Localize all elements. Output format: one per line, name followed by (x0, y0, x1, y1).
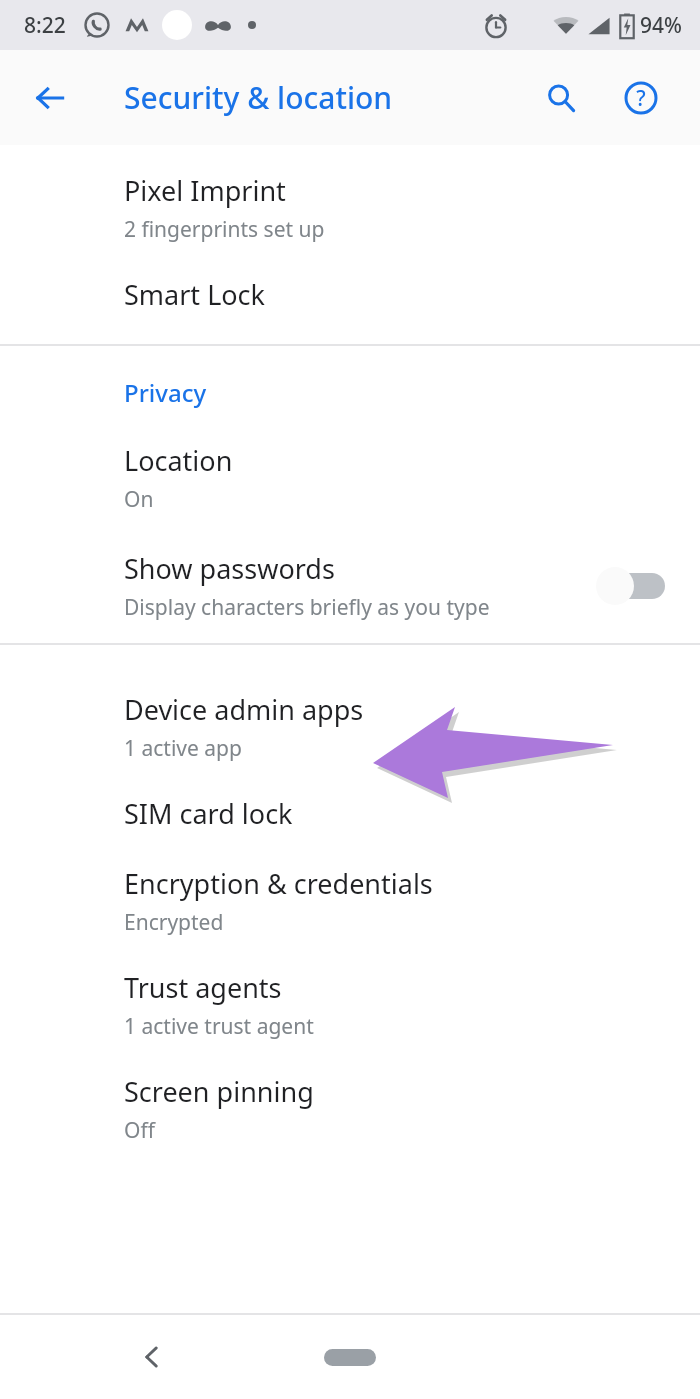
button[interactable]: Search (532, 69, 590, 127)
button[interactable] (596, 564, 668, 608)
staticText: Encrypted (124, 908, 224, 937)
staticText: Smart Lock (124, 276, 265, 313)
staticText: Encryption & credentials (124, 865, 433, 902)
staticText: 1 active app (124, 734, 242, 763)
button[interactable]: Screen pinning (0, 1073, 700, 1145)
staticText: Off (124, 1116, 155, 1145)
staticText: 94% (640, 11, 682, 40)
button[interactable]: Device admin apps (0, 691, 700, 763)
staticText: Show passwords (124, 550, 335, 587)
staticText: ? (636, 84, 646, 113)
button[interactable]: Show passwords (0, 550, 700, 622)
staticText: Privacy (124, 376, 207, 409)
staticText: Device admin apps (124, 691, 364, 728)
staticText: Pixel Imprint (124, 172, 286, 209)
staticText: SIM card lock (124, 795, 293, 832)
button[interactable]: Pixel Imprint (0, 172, 700, 244)
button[interactable]: SIM card lock (0, 795, 700, 832)
staticText: Location (124, 442, 233, 479)
button[interactable]: Location (0, 442, 700, 514)
button[interactable]: Trust agents (0, 969, 700, 1041)
button[interactable]: Home (300, 1335, 400, 1379)
staticText: Security & location (124, 77, 393, 118)
button[interactable]: Back (20, 68, 80, 128)
staticText: 1 active trust agent (124, 1012, 314, 1041)
button[interactable]: Help (612, 69, 670, 127)
staticText: Screen pinning (124, 1073, 314, 1110)
button[interactable]: Smart Lock (0, 276, 700, 313)
staticText: Display characters briefly as you type (124, 593, 490, 622)
staticText: 2 fingerprints set up (124, 215, 325, 244)
staticText: On (124, 485, 154, 514)
staticText: Trust agents (124, 969, 282, 1006)
button[interactable]: Back (122, 1327, 182, 1387)
button[interactable]: Encryption & credentials (0, 865, 700, 937)
staticText: 8:22 (24, 11, 66, 40)
